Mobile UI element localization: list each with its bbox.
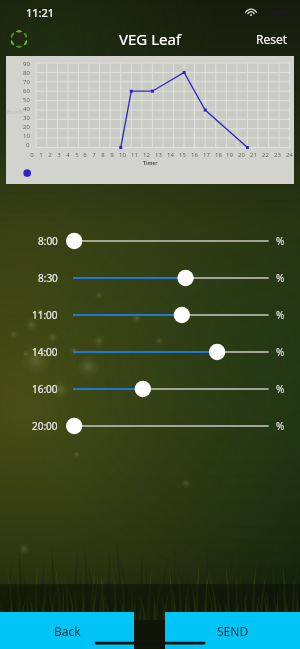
staticText: Blue % bbox=[7, 109, 23, 116]
staticText: 15 bbox=[179, 151, 186, 159]
staticText: 20:00 bbox=[32, 419, 58, 433]
staticText: 90 bbox=[23, 60, 30, 68]
button[interactable]: 8:00 bbox=[0, 222, 300, 259]
staticText: % bbox=[276, 271, 285, 285]
staticText: 13 bbox=[155, 151, 162, 159]
staticText: % bbox=[276, 419, 285, 433]
staticText: 16 bbox=[191, 151, 198, 159]
staticText: 8 bbox=[101, 151, 105, 159]
staticText: % bbox=[276, 234, 285, 248]
staticText: 0 bbox=[26, 141, 30, 149]
staticText: VEG Leaf bbox=[119, 29, 182, 49]
staticText: 24 bbox=[286, 151, 293, 159]
staticText: % bbox=[276, 382, 285, 396]
staticText: 11:21 bbox=[26, 5, 55, 20]
staticText: 5 bbox=[75, 151, 79, 159]
button[interactable]: 11:00 bbox=[0, 296, 300, 333]
staticText: % bbox=[276, 308, 285, 322]
button[interactable]: SEND bbox=[165, 612, 300, 649]
staticText: Timer bbox=[143, 160, 158, 167]
staticText: 80 bbox=[23, 69, 30, 77]
staticText: 30 bbox=[23, 114, 30, 122]
staticText: 40 bbox=[23, 105, 30, 113]
staticText: 20 bbox=[238, 151, 245, 159]
staticText: Reset bbox=[256, 31, 288, 47]
staticText: SEND bbox=[217, 623, 249, 639]
staticText: Back bbox=[54, 623, 81, 639]
button[interactable]: Reset bbox=[252, 27, 292, 51]
button[interactable]: Back bbox=[0, 612, 134, 649]
staticText: 14:00 bbox=[32, 345, 58, 359]
staticText: 7 bbox=[92, 151, 96, 159]
staticText: 16:00 bbox=[32, 382, 58, 396]
staticText: 50 bbox=[23, 96, 30, 104]
staticText: 2 bbox=[48, 151, 52, 159]
staticText: 19 bbox=[226, 151, 233, 159]
staticText: 4 bbox=[66, 151, 70, 159]
staticText: 6 bbox=[83, 151, 87, 159]
staticText: 18 bbox=[215, 151, 222, 159]
staticText: 20 bbox=[23, 123, 30, 131]
staticText: % bbox=[276, 345, 285, 359]
staticText: 70 bbox=[23, 78, 30, 86]
staticText: 11:00 bbox=[32, 308, 58, 322]
staticText: 8:00 bbox=[38, 234, 58, 248]
staticText: 9 bbox=[110, 151, 114, 159]
staticText: 0 bbox=[30, 151, 34, 159]
staticText: 3 bbox=[57, 151, 61, 159]
staticText: 17 bbox=[203, 151, 210, 159]
staticText: 22 bbox=[262, 151, 269, 159]
staticText: 12 bbox=[143, 151, 150, 159]
staticText: 23 bbox=[274, 151, 281, 159]
button[interactable]: 16:00 bbox=[0, 370, 300, 407]
staticText: 10 bbox=[119, 151, 126, 159]
button[interactable]: 20:00 bbox=[0, 407, 300, 444]
button[interactable]: Recycle bbox=[4, 24, 34, 54]
staticText: 60 bbox=[23, 87, 30, 95]
staticText: 10 bbox=[23, 132, 30, 140]
staticText: 21 bbox=[250, 151, 257, 159]
staticText: 1 bbox=[39, 151, 43, 159]
staticText: 11 bbox=[131, 151, 138, 159]
button[interactable]: 8:30 bbox=[0, 259, 300, 296]
button[interactable]: 14:00 bbox=[0, 333, 300, 370]
staticText: 8:30 bbox=[38, 271, 58, 285]
staticText: 14 bbox=[167, 151, 174, 159]
